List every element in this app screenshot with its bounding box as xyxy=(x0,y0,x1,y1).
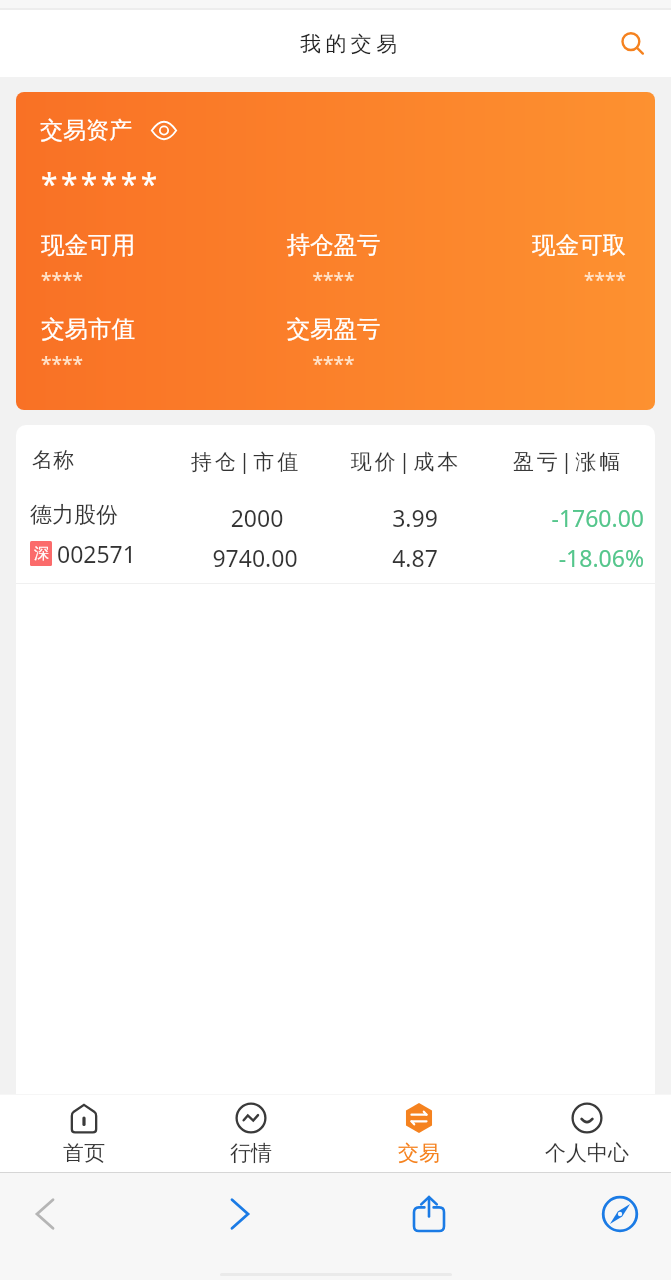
staticText: 交易资产 xyxy=(40,116,132,145)
button[interactable]: 首页 xyxy=(0,1102,167,1166)
button[interactable]: Back xyxy=(15,1184,75,1244)
button[interactable]: 行情 xyxy=(167,1102,335,1166)
staticText: 交易市值 xyxy=(41,314,236,344)
staticText: 德力股份 xyxy=(30,501,118,529)
staticText: 4.87 xyxy=(215,542,615,573)
staticText: **** xyxy=(236,351,431,377)
staticText: -18.06% xyxy=(244,542,644,573)
staticText: 盈亏|涨幅 xyxy=(368,447,655,476)
staticText: 首页 xyxy=(63,1140,105,1166)
staticText: 持仓|市值 xyxy=(46,447,446,476)
staticText: 名称 xyxy=(32,447,74,473)
staticText: 交易盈亏 xyxy=(236,314,431,344)
button[interactable]: 个人中心 xyxy=(503,1102,671,1166)
staticText: 个人中心 xyxy=(545,1140,629,1166)
button[interactable]: Safari xyxy=(590,1184,650,1244)
staticText: 我的交易 xyxy=(300,31,402,57)
button[interactable]: Toggle asset visibility xyxy=(149,115,179,145)
staticText: ****** xyxy=(41,163,161,204)
staticText: -1760.00 xyxy=(244,502,644,533)
staticText: 现金可用 xyxy=(41,230,236,260)
button[interactable]: Share xyxy=(399,1184,459,1244)
staticText: 持仓盈亏 xyxy=(236,230,431,260)
staticText: 2000 xyxy=(57,502,457,533)
button[interactable]: Search xyxy=(611,22,655,66)
staticText: 现价|成本 xyxy=(206,447,606,476)
staticText: 行情 xyxy=(230,1140,272,1166)
staticText: **** xyxy=(236,267,431,293)
staticText: 3.99 xyxy=(215,502,615,533)
button[interactable]: 交易 xyxy=(335,1102,503,1166)
button[interactable]: 交易资产 xyxy=(16,92,655,410)
staticText: 002571 xyxy=(57,538,136,569)
staticText: **** xyxy=(41,351,236,377)
button[interactable]: 德力股份 xyxy=(16,481,655,583)
staticText: 现金可取 xyxy=(431,230,626,260)
staticText: **** xyxy=(41,267,236,293)
staticText: 深 xyxy=(34,544,49,563)
button[interactable]: Forward xyxy=(210,1184,270,1244)
staticText: 9740.00 xyxy=(55,542,455,573)
staticText: 交易 xyxy=(398,1140,440,1166)
staticText: **** xyxy=(431,267,626,293)
